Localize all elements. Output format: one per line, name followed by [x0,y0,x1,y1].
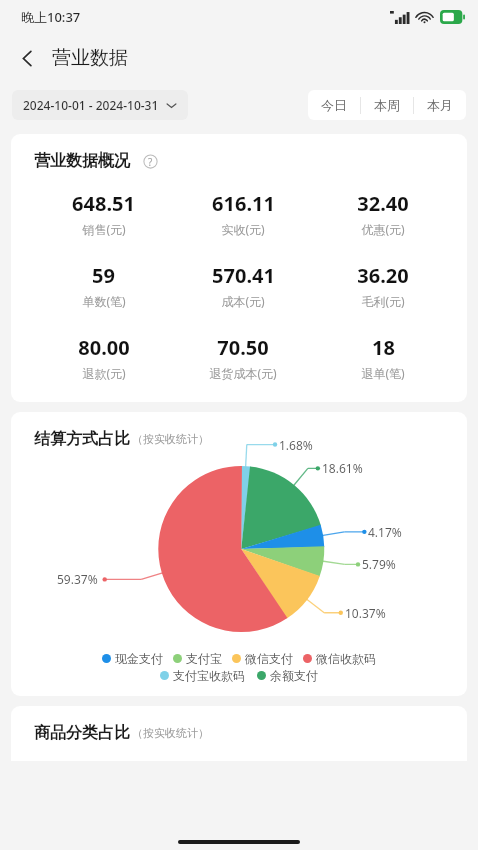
staticText: 退单(笔) [361,365,405,381]
staticText: 毛利(元) [361,293,405,309]
staticText: 退货成本(元) [209,365,277,381]
staticText: 本月 [427,97,453,113]
staticText: ? [148,155,153,169]
staticText: 今日 [321,97,347,113]
staticText: 59.37% [57,571,98,587]
staticText: 成本(元) [221,293,265,309]
staticText: 结算方式占比 [34,429,130,449]
staticText: 销售(元) [82,221,126,237]
staticText: 32.40 [357,190,409,217]
button[interactable]: 现金支付 [102,651,163,666]
staticText: 36.20 [357,262,409,289]
staticText: 支付宝 [186,651,222,666]
staticText: 4.17% [368,524,402,540]
button[interactable]: 本月 [414,90,466,120]
staticText: 支付宝收款码 [173,668,245,683]
button[interactable]: 微信收款码 [303,651,376,666]
staticText: 1.68% [279,437,313,453]
button[interactable]: 本周 [361,90,413,120]
button[interactable]: 支付宝收款码 [160,668,245,683]
button[interactable]: 余额支付 [257,668,318,683]
staticText: 570.41 [212,262,275,289]
staticText: 优惠(元) [361,221,405,237]
button[interactable]: 2024-10-01 - 2024-10-31 [12,90,188,120]
button[interactable]: 微信支付 [232,651,293,666]
staticText: 59 [92,262,115,289]
staticText: 2024-10-01 - 2024-10-31 [23,97,159,113]
staticText: 商品分类占比 [34,723,130,743]
staticText: 80.00 [78,334,130,361]
staticText: 微信支付 [245,651,293,666]
button[interactable]: Help [141,152,160,171]
staticText: 营业数据 [52,46,128,70]
staticText: 616.11 [212,190,275,217]
staticText: 单数(笔) [82,293,126,309]
button[interactable]: Back [6,37,48,79]
staticText: 5.79% [362,556,396,572]
staticText: 本周 [374,97,400,113]
staticText: 70.50 [217,334,269,361]
staticText: 10.37% [345,605,386,621]
staticText: 营业数据概况 [34,151,130,171]
staticText: 微信收款码 [316,651,376,666]
staticText: 现金支付 [115,651,163,666]
staticText: 648.51 [72,190,135,217]
staticText: 晚上10:37 [21,8,81,26]
staticText: 18.61% [322,460,363,476]
staticText: 18 [372,334,395,361]
staticText: （按实收统计） [132,432,209,446]
staticText: 退款(元) [82,365,126,381]
staticText: （按实收统计） [132,726,209,740]
button[interactable]: 今日 [308,90,360,120]
staticText: 实收(元) [221,221,265,237]
button[interactable]: 支付宝 [173,651,222,666]
staticText: 余额支付 [270,668,318,683]
